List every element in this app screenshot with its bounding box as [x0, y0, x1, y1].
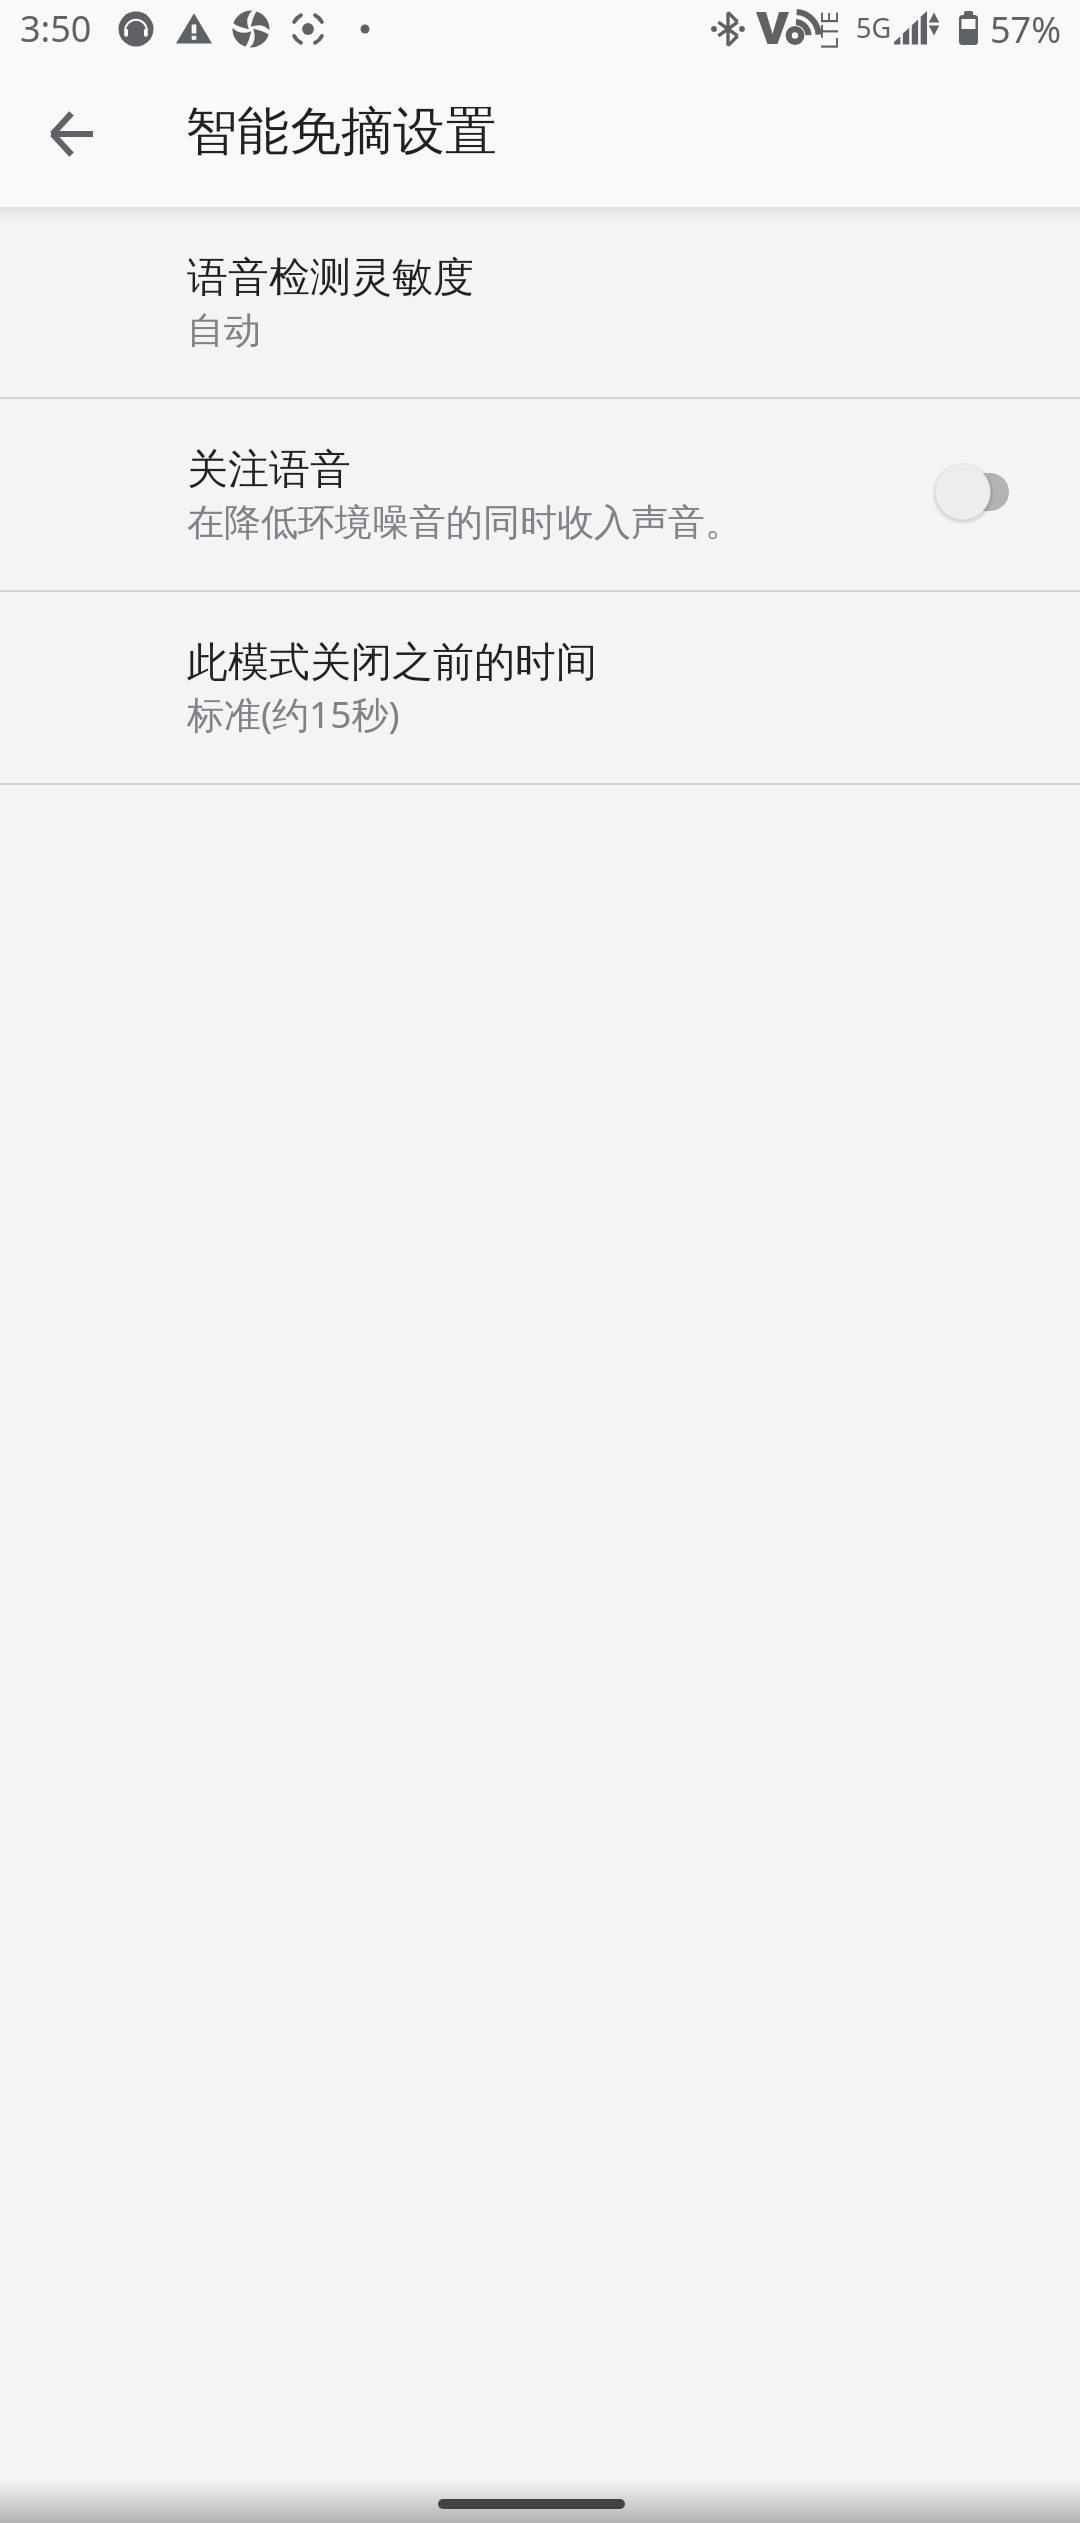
staticText: 智能免摘设置: [185, 99, 497, 165]
staticText: 5G: [856, 9, 892, 46]
staticText: LTE: [812, 11, 845, 50]
staticText: 57%: [990, 5, 1062, 54]
staticText: 自动: [187, 307, 261, 354]
staticText: 标准(约15秒): [187, 688, 400, 739]
button[interactable]: 关注语音 toggle: [927, 460, 1009, 524]
button[interactable]: 关注语音: [0, 399, 1080, 590]
button[interactable]: Back: [26, 88, 118, 180]
staticText: 语音检测灵敏度: [187, 252, 474, 304]
staticText: 此模式关闭之前的时间: [187, 637, 597, 689]
button[interactable]: 语音检测灵敏度: [0, 207, 1080, 397]
staticText: 在降低环境噪音的同时收入声音。: [187, 499, 742, 546]
staticText: 3:50: [20, 4, 92, 53]
button[interactable]: 此模式关闭之前的时间: [0, 592, 1080, 783]
staticText: 关注语音: [187, 444, 351, 496]
